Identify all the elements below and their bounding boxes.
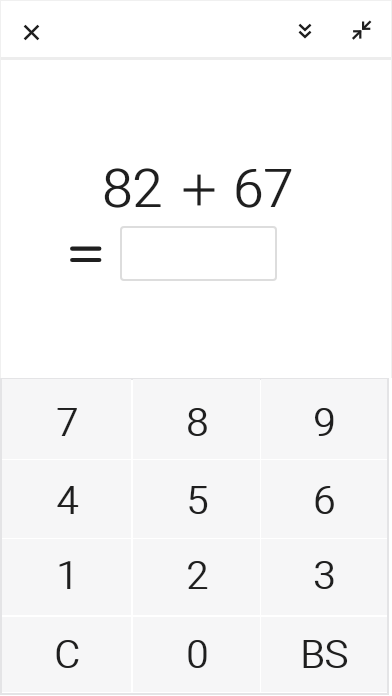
staticText: C	[54, 631, 80, 677]
staticText: 4	[56, 477, 78, 523]
button[interactable]: 5	[133, 460, 260, 538]
staticText: 3	[313, 552, 335, 598]
staticText: BS	[301, 631, 349, 677]
button[interactable]: 8	[133, 379, 260, 459]
staticText: 9	[313, 399, 335, 445]
staticText: 5	[187, 477, 209, 523]
button[interactable]: BS	[261, 617, 387, 692]
staticText: 7	[56, 399, 78, 445]
staticText: 1	[57, 552, 79, 598]
staticText: 7	[57, 399, 79, 445]
staticText: 82	[102, 157, 162, 220]
staticText: 2	[187, 552, 209, 598]
staticText: 1	[56, 552, 78, 598]
staticText: C	[55, 631, 81, 677]
button[interactable]	[9, 10, 53, 54]
button[interactable]: C	[2, 617, 131, 692]
staticText: 0	[187, 631, 209, 677]
button[interactable]: 7	[2, 379, 131, 459]
staticText: 82	[103, 157, 163, 220]
button[interactable]: 4	[2, 460, 131, 538]
staticText: 0	[186, 631, 208, 677]
button[interactable]: 9	[261, 379, 387, 459]
button[interactable]: 1	[2, 539, 131, 615]
staticText: 67	[233, 157, 293, 220]
staticText: BS	[300, 631, 348, 677]
staticText: 8	[187, 399, 209, 445]
button[interactable]	[339, 8, 383, 52]
staticText: 4	[57, 477, 79, 523]
staticText: 5	[186, 477, 208, 523]
staticText: 67	[234, 157, 294, 220]
staticText: 3	[314, 552, 336, 598]
button[interactable]	[120, 226, 277, 281]
button[interactable]: 6	[261, 460, 387, 538]
staticText: 6	[313, 477, 335, 523]
button[interactable]	[283, 8, 327, 52]
button[interactable]: 3	[261, 539, 387, 615]
button[interactable]: 2	[133, 539, 260, 615]
staticText: 9	[314, 399, 336, 445]
staticText: 8	[186, 399, 208, 445]
staticText: 6	[314, 477, 336, 523]
staticText: 2	[186, 552, 208, 598]
button[interactable]: 0	[133, 617, 260, 692]
